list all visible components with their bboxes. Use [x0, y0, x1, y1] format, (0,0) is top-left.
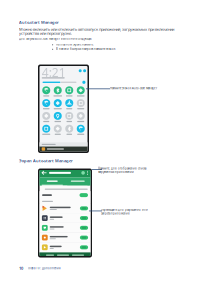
staticText: 4:21 [42, 64, 66, 80]
staticText: На главном экране нажмите [56, 43, 93, 46]
button[interactable]: Quick setting [63, 125, 75, 135]
staticText: Экран Auto-start Manager [19, 158, 73, 163]
staticText: Auto-start Manager [19, 19, 59, 25]
button[interactable]: Quick setting [40, 86, 52, 96]
staticText: 10 [19, 265, 23, 271]
button[interactable] [39, 243, 90, 252]
button[interactable]: Quick setting [75, 125, 86, 135]
staticText: В панели быстрых настроек нажмите значок [56, 47, 115, 51]
staticText: запрета приложения [101, 212, 130, 215]
button[interactable] [65, 178, 90, 186]
button[interactable]: Quick setting [63, 86, 75, 96]
button[interactable]: Quick setting [52, 112, 63, 122]
button[interactable]: Quick setting [63, 112, 75, 122]
button[interactable]: Quick setting [40, 99, 52, 109]
button[interactable] [39, 223, 90, 233]
staticText: загруженных приложений [98, 170, 134, 174]
staticText: Перемещайте для разрешения или [101, 208, 148, 211]
button[interactable] [39, 213, 90, 223]
button[interactable]: Back [42, 171, 46, 175]
button[interactable]: Quick setting [40, 125, 52, 135]
button[interactable]: Quick setting [52, 99, 63, 109]
button[interactable]: Quick setting [75, 112, 86, 122]
staticText: устройства или перезагрузке. [19, 30, 72, 36]
button[interactable]: More options [87, 171, 88, 175]
staticText: Глава 10: Дополнения [28, 266, 61, 270]
button[interactable]: Filter [81, 171, 85, 175]
button[interactable] [39, 178, 65, 186]
button[interactable] [39, 233, 90, 243]
button[interactable] [39, 204, 90, 213]
staticText: Для запуска Auto-start Manager выполните… [19, 37, 92, 40]
button[interactable]: Quick setting [52, 125, 63, 135]
staticText: Нажмите значок Auto-start Manager [110, 86, 157, 90]
staticText: Нажмите, для отображения списка [98, 167, 146, 170]
button[interactable]: Quick setting [63, 99, 75, 109]
staticText: Можно включить или отключить автозапуск … [19, 26, 174, 32]
button[interactable]: Quick setting [75, 86, 86, 96]
button[interactable] [39, 191, 90, 199]
button[interactable]: Quick setting [40, 112, 52, 122]
button[interactable]: Quick setting [52, 86, 63, 96]
button[interactable]: Quick setting [75, 99, 86, 109]
